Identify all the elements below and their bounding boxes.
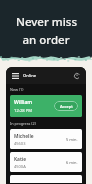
button[interactable]: Katie [10,152,82,172]
staticText: Never miss [16,14,77,30]
staticText: William [14,99,33,106]
button[interactable] [10,175,82,183]
staticText: Michelle [14,133,34,140]
staticText: 45603 [14,141,26,146]
button[interactable]: History [72,71,82,81]
button[interactable]: Michelle [10,129,82,149]
staticText: an order [22,32,70,48]
staticText: 12:28 PM [14,108,33,114]
button[interactable]: Menu [10,71,20,81]
staticText: 6 min. [66,160,78,165]
staticText: Accept [60,104,73,109]
staticText: Online [23,73,37,79]
staticText: 5 min. [66,137,78,142]
staticText: In progress (2) [10,121,36,126]
staticText: 4500A [14,164,26,169]
button[interactable]: William [10,95,82,117]
staticText: New (1) [10,87,24,92]
staticText: Katie [14,156,27,163]
button[interactable]: Accept [54,101,78,111]
